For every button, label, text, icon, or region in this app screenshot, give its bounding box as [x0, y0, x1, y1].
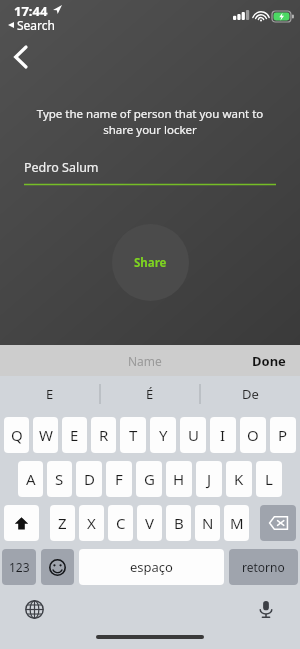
staticText: U: [188, 425, 199, 445]
button[interactable]: A: [18, 461, 43, 497]
staticText: H: [173, 469, 185, 489]
button[interactable]: V: [137, 505, 162, 541]
staticText: retorno: [242, 559, 285, 575]
staticText: 123: [9, 559, 30, 575]
button[interactable]: M: [224, 505, 249, 541]
button[interactable]: W: [33, 417, 58, 453]
staticText: O: [247, 425, 259, 445]
button[interactable]: D: [76, 461, 102, 497]
button[interactable]: C: [108, 505, 133, 541]
staticText: V: [145, 513, 155, 533]
staticText: L: [265, 469, 273, 489]
button[interactable]: Emoji: [41, 549, 74, 585]
button[interactable]: H: [166, 461, 192, 497]
button[interactable]: F: [106, 461, 132, 497]
staticText: K: [234, 469, 244, 489]
button[interactable]: P: [270, 417, 296, 453]
button[interactable]: E: [62, 417, 87, 453]
staticText: E: [46, 385, 54, 403]
button[interactable]: Change keyboard language: [20, 595, 48, 623]
button[interactable]: Y: [150, 417, 176, 453]
button[interactable]: I: [210, 417, 236, 453]
button[interactable]: R: [91, 417, 116, 453]
staticText: T: [129, 425, 138, 445]
staticText: M: [230, 513, 244, 533]
button[interactable]: E: [0, 376, 100, 412]
staticText: E: [70, 425, 79, 445]
button[interactable]: K: [226, 461, 252, 497]
button[interactable]: Share: [112, 224, 189, 301]
staticText: G: [144, 469, 155, 489]
button[interactable]: Dictate: [252, 595, 280, 623]
staticText: N: [202, 513, 214, 533]
button[interactable]: Z: [50, 505, 75, 541]
staticText: R: [99, 425, 109, 445]
staticText: W: [39, 425, 53, 445]
button[interactable]: retorno: [229, 549, 298, 585]
button[interactable]: Back: [2, 38, 40, 76]
button[interactable]: Pedro Salum: [24, 159, 276, 185]
staticText: C: [116, 513, 126, 533]
staticText: I: [220, 425, 226, 445]
staticText: Share: [134, 255, 167, 271]
button[interactable]: espaço: [79, 549, 224, 585]
staticText: De: [242, 385, 259, 403]
button[interactable]: De: [200, 376, 300, 412]
button[interactable]: B: [166, 505, 191, 541]
staticText: Z: [58, 513, 67, 533]
button[interactable]: Shift: [4, 505, 39, 541]
staticText: X: [87, 513, 96, 533]
staticText: D: [84, 469, 95, 489]
button[interactable]: U: [180, 417, 206, 453]
staticText: A: [26, 469, 36, 489]
button[interactable]: J: [196, 461, 222, 497]
staticText: Done: [252, 352, 286, 370]
staticText: Search: [17, 17, 55, 33]
staticText: 17:44: [14, 2, 48, 20]
button[interactable]: X: [79, 505, 104, 541]
staticText: Y: [159, 425, 168, 445]
staticText: F: [115, 469, 123, 489]
button[interactable]: Q: [4, 417, 29, 453]
staticText: espaço: [130, 558, 173, 576]
staticText: B: [174, 513, 184, 533]
button[interactable]: O: [240, 417, 266, 453]
staticText: S: [55, 469, 64, 489]
staticText: Pedro Salum: [24, 159, 99, 176]
button[interactable]: S: [47, 461, 72, 497]
button[interactable]: L: [256, 461, 282, 497]
button[interactable]: T: [120, 417, 146, 453]
staticText: Type the name of person that you want to…: [30, 106, 270, 137]
staticText: Q: [11, 425, 23, 445]
staticText: P: [278, 425, 288, 445]
staticText: Name: [128, 353, 162, 369]
button[interactable]: Backspace: [260, 505, 296, 541]
staticText: É: [146, 385, 154, 403]
button[interactable]: Done: [248, 348, 290, 374]
button[interactable]: G: [136, 461, 162, 497]
button[interactable]: N: [195, 505, 220, 541]
button[interactable]: 123: [2, 549, 36, 585]
staticText: J: [207, 469, 212, 489]
button[interactable]: É: [100, 376, 200, 412]
